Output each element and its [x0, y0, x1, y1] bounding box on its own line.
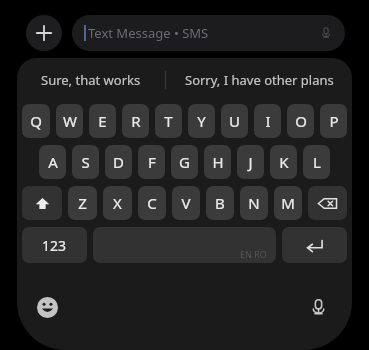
staticText: E	[98, 111, 107, 131]
button[interactable]: Enter	[282, 227, 347, 263]
staticText: 123	[42, 236, 67, 255]
button[interactable]: K	[270, 145, 297, 179]
button[interactable]: U	[221, 104, 248, 138]
button[interactable]: B	[206, 186, 234, 220]
staticText: K	[279, 152, 289, 172]
button[interactable]: Q	[22, 104, 50, 138]
button[interactable]: T	[155, 104, 182, 138]
staticText: Sure, that works	[41, 71, 141, 89]
staticText: I	[265, 111, 271, 131]
staticText: J	[248, 152, 253, 172]
staticText: B	[215, 193, 225, 213]
staticText: D	[113, 152, 124, 172]
button[interactable]: O	[287, 104, 314, 138]
button[interactable]: E	[89, 104, 116, 138]
staticText: H	[212, 152, 224, 172]
staticText: O	[295, 111, 307, 131]
button[interactable]: G	[171, 145, 198, 179]
button[interactable]: J	[237, 145, 264, 179]
button[interactable]: V	[172, 186, 200, 220]
staticText: A	[48, 152, 58, 172]
staticText: U	[229, 111, 240, 131]
staticText: Text Message • SMS	[88, 24, 209, 42]
button[interactable]: Emoji	[30, 290, 64, 324]
button[interactable]: S	[72, 145, 99, 179]
button[interactable]: M	[274, 186, 302, 220]
staticText: N	[248, 193, 260, 213]
staticText: X	[113, 193, 122, 213]
button[interactable]: X	[103, 186, 132, 220]
button[interactable]: F	[138, 145, 165, 179]
button[interactable]: H	[204, 145, 231, 179]
staticText: G	[179, 152, 190, 172]
button[interactable]: Voice input	[313, 20, 339, 46]
button[interactable]: C	[138, 186, 166, 220]
staticText: EN RO	[240, 248, 267, 260]
button[interactable]: Voice typing	[301, 290, 335, 324]
staticText: L	[313, 152, 321, 172]
button[interactable]: Shift	[22, 186, 62, 220]
button[interactable]: Sure, that works	[17, 58, 165, 102]
button[interactable]: Space	[93, 227, 276, 263]
staticText: R	[131, 111, 141, 131]
staticText: Z	[78, 193, 87, 213]
button[interactable]: N	[240, 186, 268, 220]
button[interactable]: A	[39, 145, 66, 179]
button[interactable]: Add attachment	[26, 15, 62, 51]
staticText: W	[63, 111, 77, 131]
staticText: Sorry, I have other plans	[185, 71, 334, 89]
button[interactable]: P	[320, 104, 347, 138]
staticText: M	[281, 193, 295, 213]
button[interactable]: W	[56, 104, 83, 138]
button[interactable]: Backspace	[308, 186, 347, 220]
staticText: S	[81, 152, 90, 172]
button[interactable]: 123	[22, 227, 87, 263]
staticText: C	[147, 193, 157, 213]
staticText: Q	[30, 111, 42, 131]
staticText: F	[148, 152, 156, 172]
button[interactable]: L	[303, 145, 330, 179]
button[interactable]: Text Message • SMS	[72, 15, 345, 51]
button[interactable]: D	[105, 145, 132, 179]
staticText: T	[164, 111, 173, 131]
button[interactable]: R	[122, 104, 149, 138]
button[interactable]: Y	[188, 104, 215, 138]
button[interactable]: Z	[68, 186, 97, 220]
button[interactable]: I	[254, 104, 281, 138]
button[interactable]: Sorry, I have other plans	[166, 58, 352, 102]
staticText: P	[329, 111, 339, 131]
staticText: Y	[197, 111, 206, 131]
staticText: V	[181, 193, 191, 213]
